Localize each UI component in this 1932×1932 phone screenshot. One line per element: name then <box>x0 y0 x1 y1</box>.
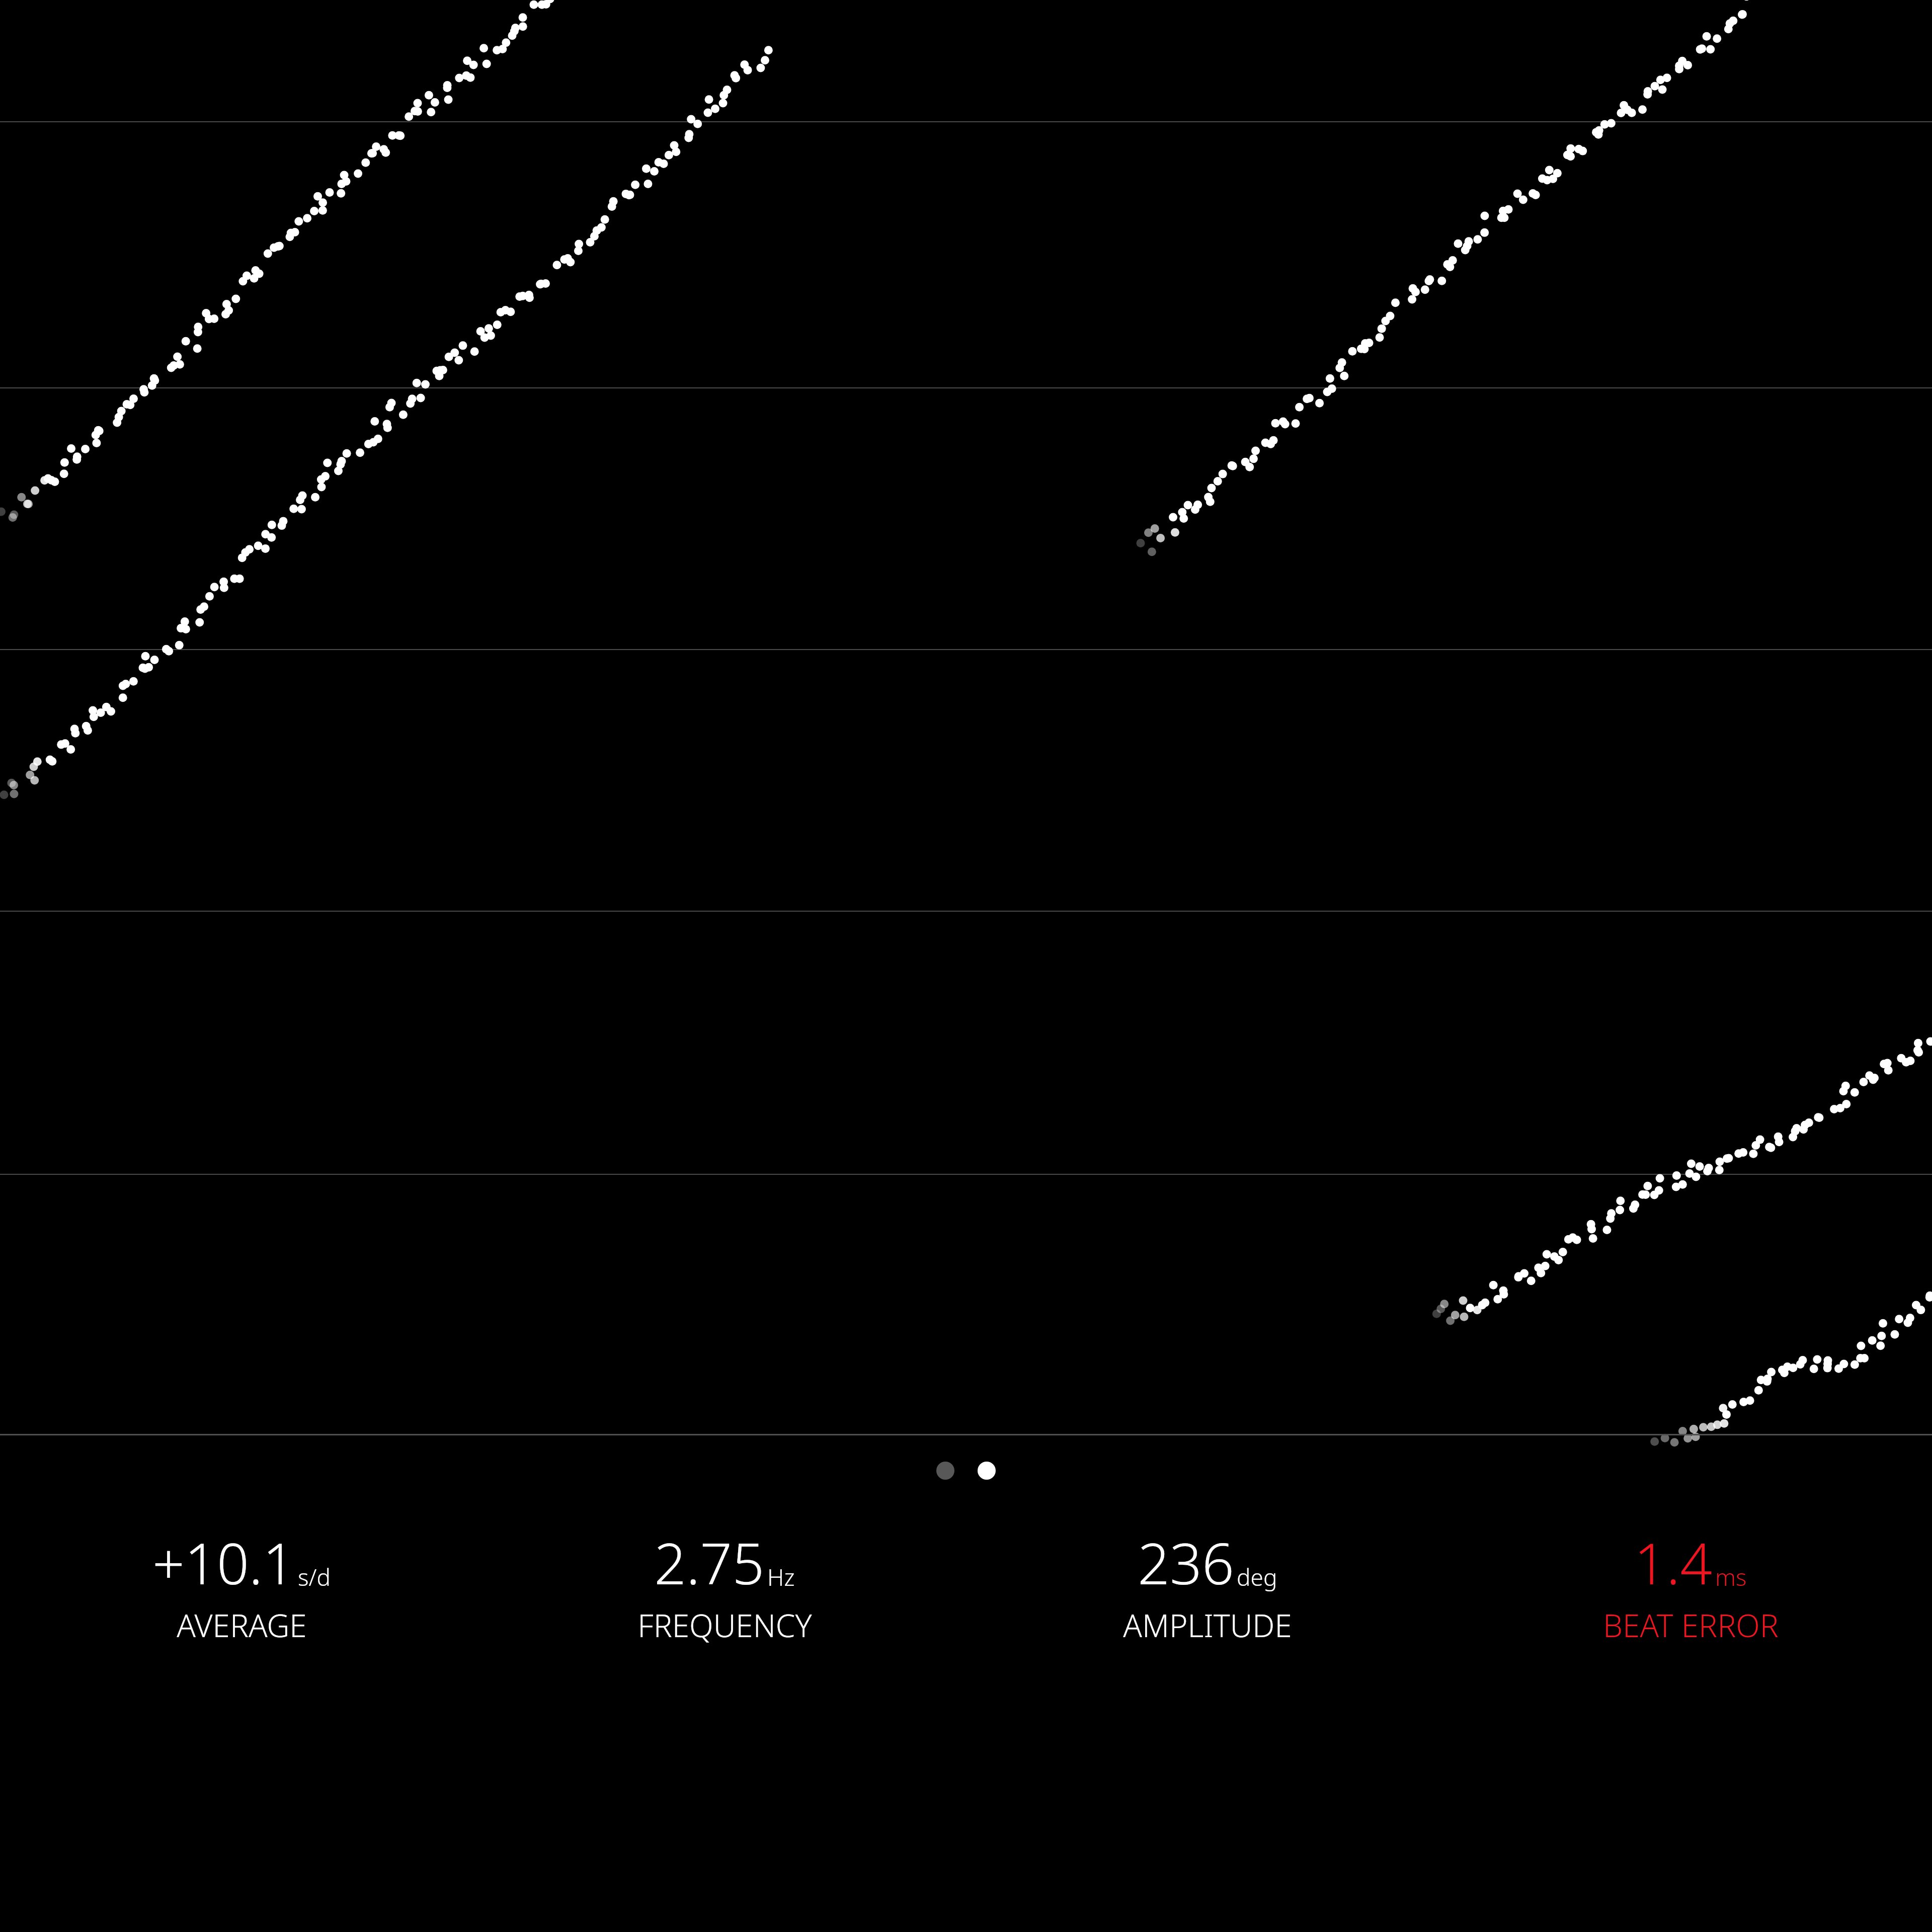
staticText: Hz <box>767 1561 795 1593</box>
staticText: BEAT ERROR <box>1603 1604 1779 1646</box>
button[interactable]: +10.1 <box>0 1524 483 1646</box>
staticText: deg <box>1237 1561 1277 1593</box>
button[interactable]: 1.4 <box>1449 1524 1932 1646</box>
staticText: FREQUENCY <box>637 1604 812 1646</box>
staticText: AMPLITUDE <box>1123 1604 1292 1646</box>
button[interactable]: 236 <box>966 1524 1449 1646</box>
staticText: s/d <box>298 1561 331 1593</box>
staticText: AVERAGE <box>177 1604 307 1646</box>
staticText: 1.4 <box>1634 1524 1713 1601</box>
staticText: ms <box>1715 1561 1747 1593</box>
staticText: 2.75 <box>654 1524 765 1601</box>
staticText: +10.1 <box>152 1524 295 1601</box>
button[interactable]: Page 2, selected <box>978 1462 996 1480</box>
button[interactable]: 2.75 <box>483 1524 966 1646</box>
staticText: 236 <box>1138 1524 1234 1601</box>
button[interactable]: Page 1 <box>936 1462 954 1480</box>
